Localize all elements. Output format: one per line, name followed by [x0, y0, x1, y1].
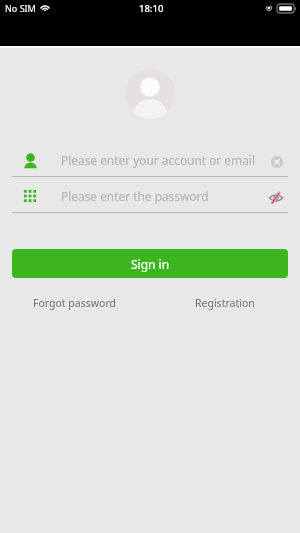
button[interactable]: Show password — [267, 189, 285, 207]
staticText: Please enter the password — [61, 188, 209, 204]
button[interactable]: Registration — [195, 296, 255, 310]
button[interactable]: Forgot password — [33, 296, 116, 310]
button[interactable]: Sign in — [12, 249, 288, 278]
staticText: Sign in — [131, 256, 170, 272]
staticText: Registration — [195, 296, 255, 310]
staticText: Please enter your account or email — [61, 152, 255, 168]
staticText: 18:10 — [139, 2, 164, 13]
staticText: No SIM — [5, 2, 36, 13]
staticText: Forgot password — [33, 296, 116, 310]
button[interactable]: Clear — [268, 153, 286, 171]
